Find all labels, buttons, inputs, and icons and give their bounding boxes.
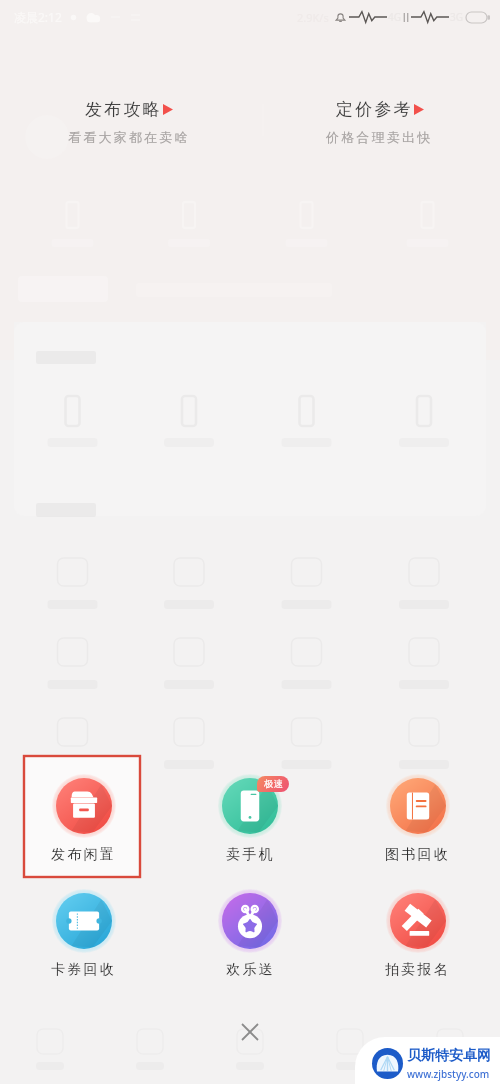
staticText: 卡券回收 [51,961,116,979]
staticText: www.zjbstyy.com [407,1067,490,1081]
staticText: 价格合理卖出快 [326,129,433,145]
staticText: 贝斯特安卓网 [407,1047,491,1065]
button[interactable]: 定价参考 [318,97,441,147]
staticText: 看看大家都在卖啥 [68,129,190,145]
staticText: 图书回收 [385,846,450,864]
button[interactable]: 欢乐送 [192,876,308,991]
button[interactable]: 发布闲置 [25,761,141,876]
staticText: 卖手机 [226,846,275,864]
staticText: 拍卖报名 [385,961,450,979]
staticText: 发布攻略 [85,99,162,120]
staticText: 极速 [264,778,283,790]
button[interactable]: 极速 [192,761,308,876]
button[interactable]: 拍卖报名 [359,876,475,991]
button[interactable]: Close [232,1014,268,1050]
button[interactable]: 发布攻略 [60,97,198,147]
button[interactable]: 卡券回收 [25,876,141,991]
staticText: 欢乐送 [226,961,275,979]
button[interactable]: 图书回收 [359,761,475,876]
staticText: 发布闲置 [51,846,116,864]
staticText: 定价参考 [336,99,413,120]
